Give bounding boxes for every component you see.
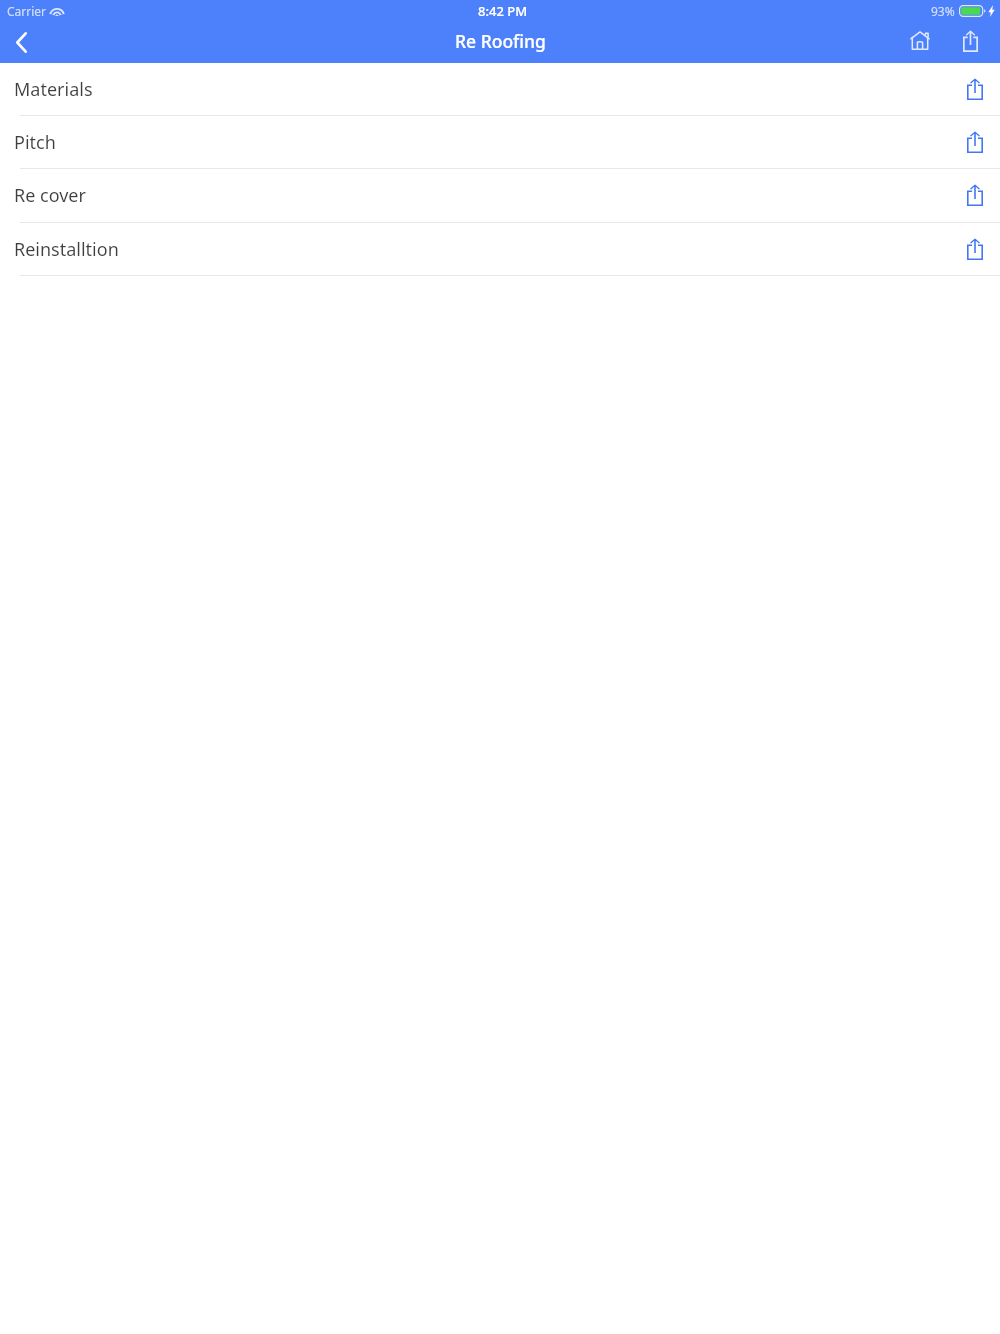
button[interactable]: Back bbox=[0, 22, 44, 63]
button[interactable]: Pitch bbox=[0, 116, 1000, 169]
button[interactable]: Share bbox=[957, 63, 993, 115]
staticText: Materials bbox=[14, 77, 93, 102]
staticText: 8:42 PM bbox=[478, 2, 528, 20]
staticText: Pitch bbox=[14, 130, 56, 155]
button[interactable]: Share bbox=[948, 22, 992, 63]
staticText: Re cover bbox=[14, 183, 86, 208]
button[interactable]: Share bbox=[957, 223, 993, 275]
staticText: 93% bbox=[931, 3, 955, 19]
staticText: Reinstalltion bbox=[14, 237, 119, 262]
button[interactable]: Share bbox=[957, 169, 993, 222]
button[interactable]: Reinstalltion bbox=[0, 223, 1000, 276]
staticText: Carrier bbox=[7, 3, 47, 19]
button[interactable]: Home bbox=[898, 22, 948, 63]
button[interactable]: Share bbox=[957, 116, 993, 168]
staticText: Re Roofing bbox=[455, 29, 546, 53]
button[interactable]: Materials bbox=[0, 63, 1000, 116]
button[interactable]: Re cover bbox=[0, 169, 1000, 223]
